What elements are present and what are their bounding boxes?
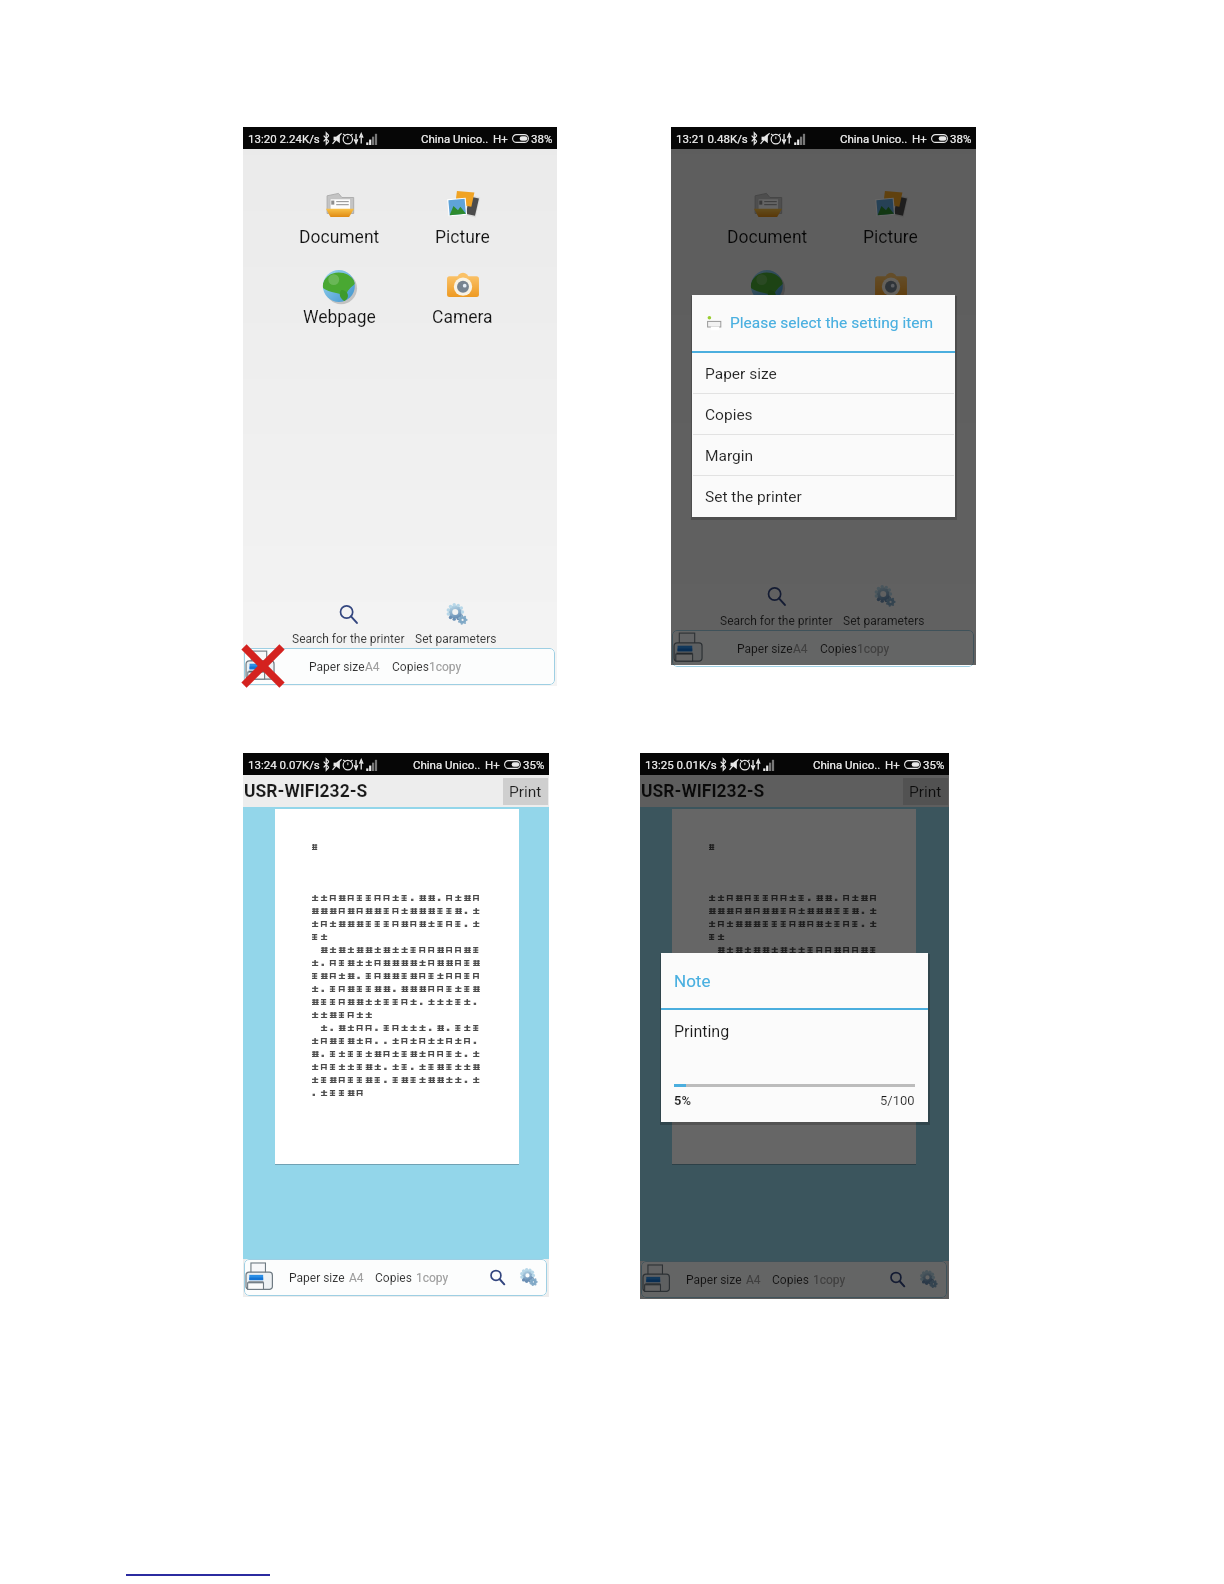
staticText: H+ <box>885 758 900 771</box>
button[interactable]: Paper size <box>641 1261 947 1298</box>
staticText: Paper size <box>289 1271 345 1285</box>
staticText: Search for the printer <box>720 614 833 628</box>
button[interactable]: Search for the printer <box>288 604 408 646</box>
staticText: Set the printer <box>705 488 802 506</box>
staticText: Webpage <box>303 307 376 327</box>
button[interactable]: Print <box>503 778 548 805</box>
staticText: Margin <box>705 447 754 465</box>
button[interactable]: Search for the printer <box>889 1271 906 1288</box>
button[interactable]: Webpage <box>285 269 393 327</box>
button[interactable]: Set parameters <box>520 1269 537 1286</box>
button[interactable]: Set the printer <box>692 476 955 517</box>
button[interactable]: Copies <box>692 394 955 435</box>
staticText: 13:25 0.01K/s <box>645 758 717 771</box>
staticText: Picture <box>435 227 490 247</box>
staticText: Print <box>509 783 542 801</box>
staticText: China Unico.. <box>840 132 908 145</box>
staticText: 1copy <box>429 660 462 674</box>
button[interactable]: Paper size <box>672 630 974 667</box>
staticText: 1copy <box>416 1271 449 1285</box>
button[interactable]: Webpage <box>713 269 821 327</box>
button[interactable]: Document <box>285 189 393 247</box>
staticText: 5% <box>674 1093 692 1108</box>
staticText: China Unico.. <box>413 758 481 771</box>
staticText: Copies <box>392 660 429 674</box>
button[interactable]: Picture <box>836 189 944 247</box>
button[interactable]: Paper size <box>692 353 955 394</box>
staticText: A4 <box>793 642 808 656</box>
staticText: Picture <box>863 227 918 247</box>
staticText: USR-WIFI232-S <box>641 781 765 802</box>
staticText: H+ <box>493 132 508 145</box>
staticText: 13:20 2.24K/s <box>248 132 320 145</box>
staticText: Webpage <box>731 307 804 327</box>
staticText: Document <box>727 227 808 247</box>
staticText: 13:21 0.48K/s <box>676 132 748 145</box>
button[interactable]: Camera <box>408 269 516 327</box>
staticText: Copies <box>820 642 857 656</box>
staticText: 5/100 <box>880 1093 915 1108</box>
staticText: A4 <box>746 1273 761 1287</box>
button[interactable]: Set parameters <box>838 586 930 628</box>
staticText: Note <box>674 971 711 991</box>
staticText: A4 <box>365 660 380 674</box>
staticText: Paper size <box>309 660 365 674</box>
staticText: 35% <box>523 758 545 771</box>
button[interactable]: Margin <box>692 435 955 476</box>
staticText: Search for the printer <box>292 632 405 646</box>
staticText: Copies <box>705 406 753 424</box>
staticText: Document <box>299 227 380 247</box>
staticText: 35% <box>923 758 945 771</box>
staticText: 38% <box>950 132 972 145</box>
button[interactable]: Picture <box>408 189 516 247</box>
staticText: 1copy <box>813 1273 846 1287</box>
staticText: Camera <box>860 307 921 327</box>
staticText: Print <box>909 783 942 801</box>
staticText: Paper size <box>737 642 793 656</box>
staticText: Please select the setting item <box>730 314 934 332</box>
staticText: A4 <box>349 1271 364 1285</box>
button[interactable]: Document <box>713 189 821 247</box>
button[interactable]: Print <box>903 778 948 805</box>
staticText: China Unico.. <box>421 132 489 145</box>
staticText: Paper size <box>705 365 777 383</box>
staticText: Set parameters <box>843 614 925 628</box>
button[interactable]: Paper size <box>244 648 555 685</box>
staticText: 13:24 0.07K/s <box>248 758 320 771</box>
button[interactable]: Camera <box>836 269 944 327</box>
staticText: USR-WIFI232-S <box>244 781 368 802</box>
staticText: Set parameters <box>415 632 497 646</box>
staticText: H+ <box>912 132 927 145</box>
button[interactable]: Search for the printer <box>489 1269 506 1286</box>
button[interactable]: Paper size <box>244 1259 547 1296</box>
button[interactable]: Set parameters <box>920 1271 937 1288</box>
staticText: China Unico.. <box>813 758 881 771</box>
staticText: Printing <box>674 1022 730 1041</box>
staticText: 1copy <box>857 642 890 656</box>
staticText: Copies <box>375 1271 412 1285</box>
staticText: Paper size <box>686 1273 742 1287</box>
staticText: Copies <box>772 1273 809 1287</box>
button[interactable]: Search for the printer <box>716 586 836 628</box>
staticText: Camera <box>432 307 493 327</box>
staticText: 38% <box>531 132 553 145</box>
button[interactable]: Set parameters <box>410 604 502 646</box>
staticText: H+ <box>485 758 500 771</box>
